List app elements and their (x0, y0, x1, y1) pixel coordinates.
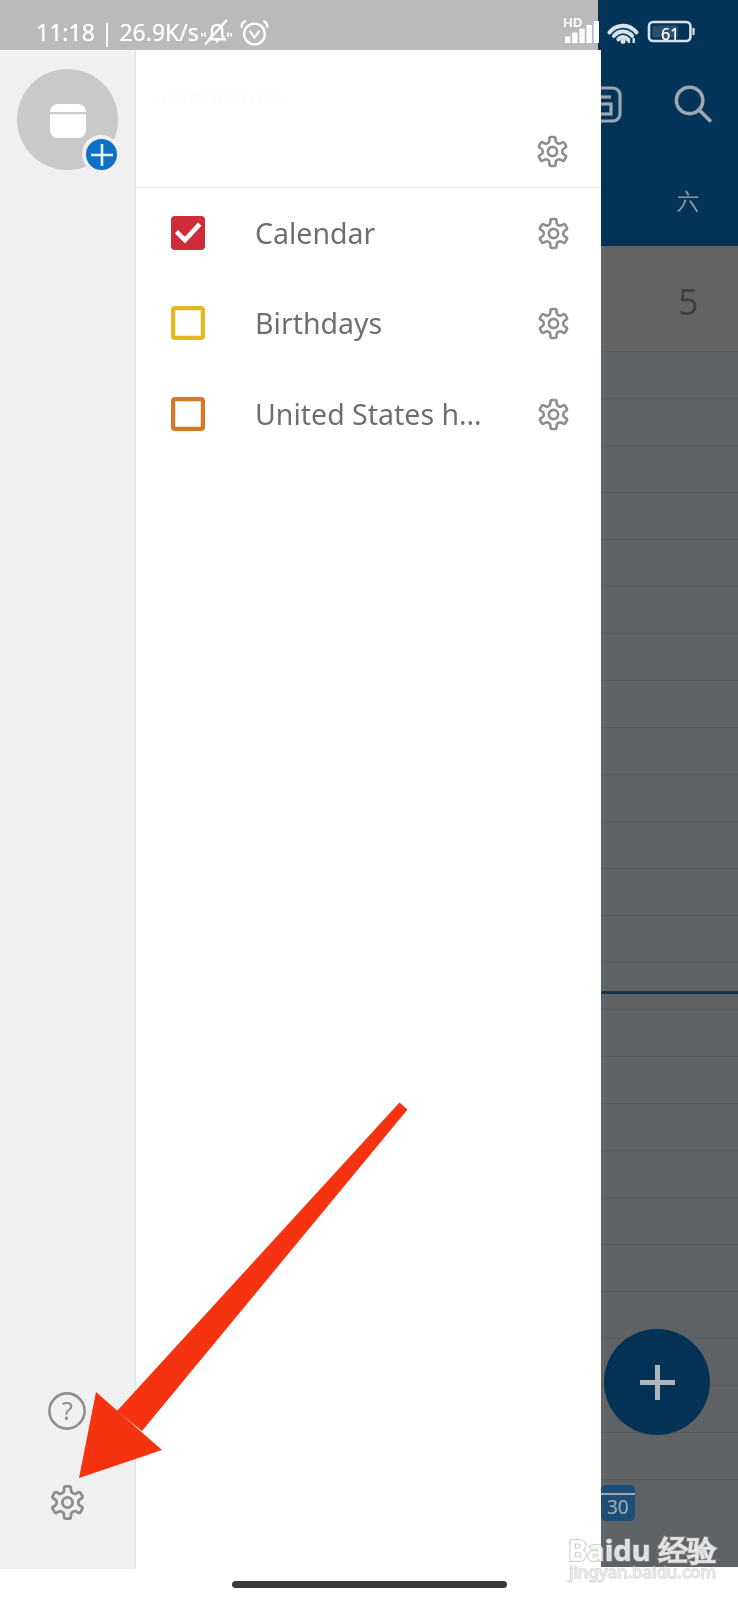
staticText: HD (563, 13, 583, 31)
button[interactable]: Calendar options (530, 300, 576, 346)
button[interactable]: Manage accounts (529, 128, 575, 174)
button[interactable]: Birthdays (136, 278, 601, 368)
button[interactable]: Settings (44, 1479, 90, 1525)
staticText: Baidu 经验 (568, 1530, 717, 1570)
staticText: 11:18 | 26.9K/s (36, 16, 199, 47)
staticText: Baidu 经验 (568, 1530, 717, 1570)
staticText: jingyan.baidu.com (569, 1560, 717, 1583)
staticText: 61 (661, 23, 680, 45)
staticText: United States h… (255, 395, 482, 434)
button[interactable]: View options (586, 86, 626, 124)
staticText: jingyan.baidu.com (569, 1560, 717, 1583)
button[interactable]: Calendar options (530, 391, 576, 437)
button[interactable]: Help (44, 1388, 90, 1434)
button[interactable]: Search (662, 74, 716, 128)
staticText: 30 (607, 1494, 629, 1520)
staticText: 5 (678, 277, 699, 323)
staticText: Calendar (255, 214, 376, 253)
staticText: Birthdays (255, 304, 383, 343)
button[interactable]: Calendar options (530, 210, 576, 256)
staticText: ? (62, 1393, 73, 1427)
button[interactable]: Add account (86, 139, 117, 170)
staticText: 六 (677, 188, 699, 216)
button[interactable]: Calendar (136, 188, 601, 278)
button[interactable]: United States h… (136, 369, 601, 459)
button[interactable]: Account (17, 69, 118, 170)
button[interactable]: Create event (604, 1329, 710, 1435)
